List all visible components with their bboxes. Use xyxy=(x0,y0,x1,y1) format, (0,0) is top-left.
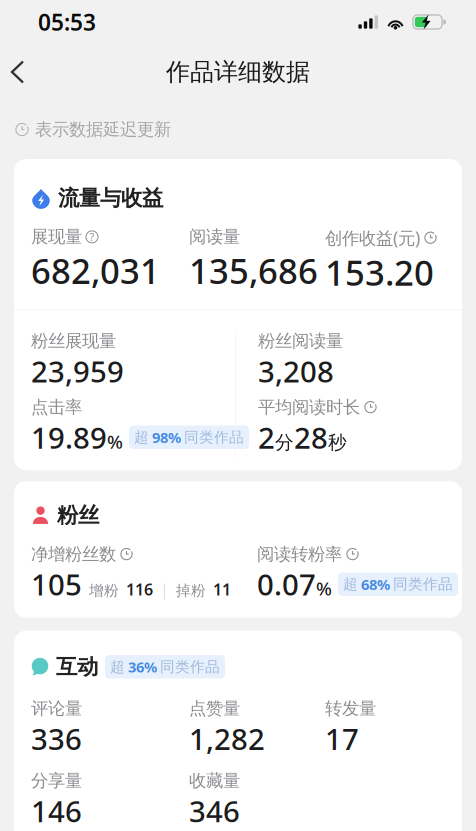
staticText: 流量与收益 xyxy=(58,185,163,211)
staticText: 作品详细数据 xyxy=(166,57,310,87)
staticText: 增粉 xyxy=(89,582,119,600)
staticText: 68% xyxy=(361,574,390,594)
staticText: % xyxy=(316,576,332,601)
staticText: 346 xyxy=(189,791,240,830)
staticText: 粉丝展现量 xyxy=(31,330,116,352)
staticText: 点击率 xyxy=(31,396,82,418)
button[interactable]: 返回 xyxy=(0,45,39,98)
staticText: 153.20 xyxy=(325,249,434,295)
staticText: 1,282 xyxy=(189,719,265,758)
staticText: 135,686 xyxy=(189,247,318,293)
staticText: 0.07 xyxy=(257,565,316,604)
staticText: 336 xyxy=(31,719,82,758)
staticText: 146 xyxy=(31,791,82,830)
staticText: 净增粉丝数 xyxy=(31,543,116,565)
staticText: 28 xyxy=(294,418,328,457)
staticText: 阅读量 xyxy=(189,226,240,247)
staticText: 互动 xyxy=(56,654,98,680)
staticText: 分 xyxy=(275,431,294,454)
staticText: 平均阅读时长 xyxy=(258,396,360,418)
staticText: 表示数据延迟更新 xyxy=(35,119,171,140)
staticText: 点赞量 xyxy=(189,698,240,719)
staticText: 同类作品 xyxy=(160,658,220,676)
staticText: 同类作品 xyxy=(393,575,453,593)
staticText: ? xyxy=(89,230,94,244)
staticText: 2 xyxy=(258,418,275,457)
staticText: 同类作品 xyxy=(184,428,244,446)
staticText: 粉丝阅读量 xyxy=(258,330,343,352)
staticText: 05:53 xyxy=(38,7,96,37)
staticText: 阅读转粉率 xyxy=(257,543,342,565)
staticText: | xyxy=(160,579,169,600)
staticText: 3,208 xyxy=(258,351,334,390)
staticText: 秒 xyxy=(328,431,347,454)
staticText: 11 xyxy=(213,579,231,600)
staticText: 评论量 xyxy=(31,698,82,719)
staticText: 超 xyxy=(343,575,358,593)
staticText: 19.89 xyxy=(31,418,107,457)
staticText: 17 xyxy=(325,719,359,758)
staticText: 36% xyxy=(128,657,157,677)
staticText: 682,031 xyxy=(31,247,160,293)
staticText: 展现量 xyxy=(31,226,82,247)
staticText: 创作收益(元) xyxy=(325,226,420,249)
staticText: 116 xyxy=(126,579,153,600)
staticText: % xyxy=(107,429,123,454)
staticText: 105 xyxy=(31,565,82,604)
staticText: 23,959 xyxy=(31,351,124,390)
staticText: 转发量 xyxy=(325,698,376,719)
staticText: 98% xyxy=(152,427,181,447)
staticText: 收藏量 xyxy=(189,770,240,791)
staticText: 分享量 xyxy=(31,770,82,791)
staticText: 超 xyxy=(134,428,149,446)
staticText: 掉粉 xyxy=(176,582,206,600)
staticText: 粉丝 xyxy=(57,502,99,528)
staticText: 超 xyxy=(110,658,125,676)
